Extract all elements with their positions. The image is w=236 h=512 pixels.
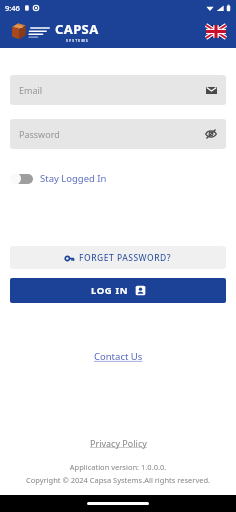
button[interactable]: Contact Us	[88, 347, 149, 366]
button[interactable]: Password	[10, 119, 226, 149]
staticText: Copyright © 2024 Capsa Systems.All right…	[0, 475, 236, 485]
staticText: Email	[19, 84, 43, 96]
other: Email	[206, 85, 217, 96]
staticText: CAPSA	[55, 20, 99, 38]
button[interactable]: Stay Logged In	[10, 169, 107, 188]
staticText: Contact Us	[94, 350, 143, 363]
button[interactable]: Email	[10, 75, 226, 105]
button[interactable]: FORGET PASSWORD?	[10, 246, 226, 269]
button[interactable]: Privacy Policy	[84, 434, 153, 452]
button[interactable]: LOG IN	[10, 278, 226, 303]
staticText: Application version: 1.0.0.0.	[0, 462, 236, 472]
staticText: LOG IN	[91, 284, 129, 297]
staticText: Password	[19, 128, 60, 140]
other: Show password	[205, 128, 217, 140]
staticText: 9:46	[5, 3, 20, 13]
staticText: Privacy Policy	[90, 437, 147, 449]
staticText: Stay Logged In	[40, 172, 107, 185]
staticText: SYSTEMS	[66, 38, 89, 43]
staticText: FORGET PASSWORD?	[79, 252, 172, 264]
button[interactable]: Change language	[206, 25, 226, 38]
